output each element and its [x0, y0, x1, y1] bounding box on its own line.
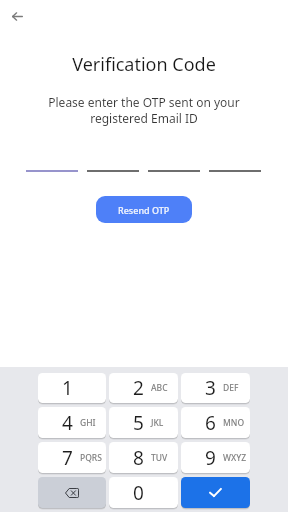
staticText: Verification Code — [0, 52, 288, 77]
staticText: JKL — [151, 417, 164, 429]
button[interactable]: 9 — [181, 442, 250, 473]
staticText: Resend OTP — [118, 204, 170, 216]
button[interactable]: Resend OTP — [96, 196, 192, 223]
staticText: 2 — [133, 375, 144, 401]
button[interactable]: 7 — [38, 442, 106, 473]
staticText: Please enter the OTP sent on your regist… — [0, 94, 288, 127]
button[interactable]: OTP digit 2 — [87, 156, 139, 172]
staticText: 6 — [205, 410, 216, 436]
button[interactable]: Backspace — [38, 477, 106, 508]
staticText: ABC — [151, 382, 168, 394]
staticText: DEF — [223, 382, 239, 394]
staticText: WXYZ — [223, 452, 247, 464]
staticText: TUV — [151, 452, 168, 464]
staticText: 9 — [205, 445, 216, 471]
staticText: 1 — [62, 375, 73, 401]
button[interactable]: OTP digit 1 — [26, 156, 78, 172]
button[interactable]: Submit — [181, 477, 250, 508]
button[interactable]: OTP digit 4 — [209, 156, 261, 172]
staticText: 0 — [133, 480, 144, 506]
button[interactable]: 4 — [38, 407, 106, 438]
staticText: MNO — [223, 417, 245, 429]
staticText: 8 — [133, 445, 144, 471]
staticText: 4 — [62, 410, 73, 436]
staticText: 3 — [205, 375, 216, 401]
button[interactable]: Back — [2, 1, 32, 31]
button[interactable]: 8 — [109, 442, 178, 473]
button[interactable]: OTP digit 3 — [148, 156, 200, 172]
button[interactable]: 1 — [38, 373, 106, 403]
staticText: 5 — [133, 410, 144, 436]
staticText: GHI — [80, 417, 96, 429]
button[interactable]: 3 — [181, 373, 250, 403]
button[interactable]: 6 — [181, 407, 250, 438]
button[interactable]: 0 — [109, 477, 178, 508]
staticText: 7 — [62, 445, 73, 471]
staticText: PQRS — [80, 452, 102, 464]
button[interactable]: 5 — [109, 407, 178, 438]
button[interactable]: 2 — [109, 373, 178, 403]
